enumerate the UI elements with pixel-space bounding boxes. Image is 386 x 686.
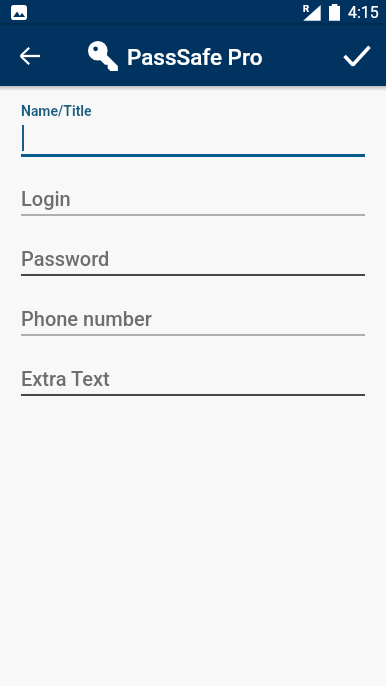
staticText: Password xyxy=(21,247,110,270)
staticText: PassSafe Pro xyxy=(127,44,263,70)
staticText: Login xyxy=(21,187,71,210)
button[interactable]: Save xyxy=(328,25,386,86)
other: Image notification xyxy=(11,5,27,20)
button[interactable]: Password xyxy=(0,217,386,277)
staticText: R xyxy=(303,3,310,14)
staticText: 4:15 xyxy=(348,3,379,22)
button[interactable]: Login xyxy=(0,157,386,217)
other: Battery full xyxy=(329,4,340,21)
staticText: Extra Text xyxy=(21,367,110,390)
button[interactable]: Name/Title xyxy=(0,97,386,157)
button[interactable]: Extra Text xyxy=(0,337,386,397)
staticText: Name/Title xyxy=(21,103,92,119)
button[interactable]: Phone number xyxy=(0,277,386,337)
staticText: Phone number xyxy=(21,307,152,330)
other: Roaming signal xyxy=(302,4,321,21)
button[interactable]: Navigate up xyxy=(0,25,58,86)
